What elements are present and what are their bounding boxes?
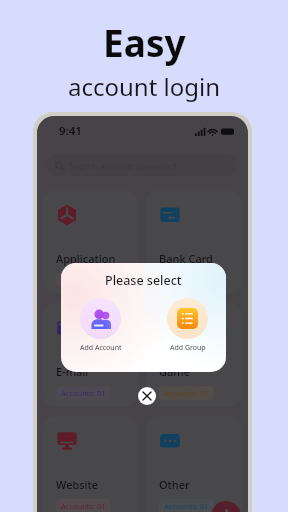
staticText: account login — [68, 70, 221, 103]
staticText: E-mail — [56, 364, 89, 379]
staticText: Accounts: 01 — [61, 388, 106, 398]
staticText: Please select — [105, 272, 182, 289]
staticText: Accounts: 01 — [164, 275, 209, 285]
staticText: 9:41 — [59, 123, 82, 139]
button[interactable]: Other — [146, 416, 242, 512]
button[interactable]: Add account — [211, 501, 241, 512]
button[interactable]: E-mail — [43, 303, 138, 407]
staticText: Add Account — [80, 343, 122, 353]
button[interactable]: Website — [43, 416, 138, 512]
button[interactable]: Add Account — [80, 298, 121, 353]
staticText: Bank Card — [159, 251, 213, 266]
staticText: Application — [56, 251, 116, 266]
staticText: Other — [159, 477, 190, 492]
staticText: Game — [159, 364, 191, 379]
staticText: Accounts: 01 — [164, 388, 209, 398]
button[interactable]: Close — [138, 387, 156, 405]
staticText: Accounts: 01 — [164, 501, 209, 511]
button[interactable]: Application — [43, 190, 138, 294]
staticText: Website — [56, 477, 99, 492]
staticText: Accounts: 01 — [61, 501, 106, 511]
staticText: Easy — [103, 17, 186, 67]
button[interactable]: Game — [146, 303, 242, 407]
staticText: Add Group — [170, 343, 206, 353]
button[interactable]: Add Group — [167, 298, 208, 353]
button[interactable]: Bank Card — [146, 190, 242, 294]
